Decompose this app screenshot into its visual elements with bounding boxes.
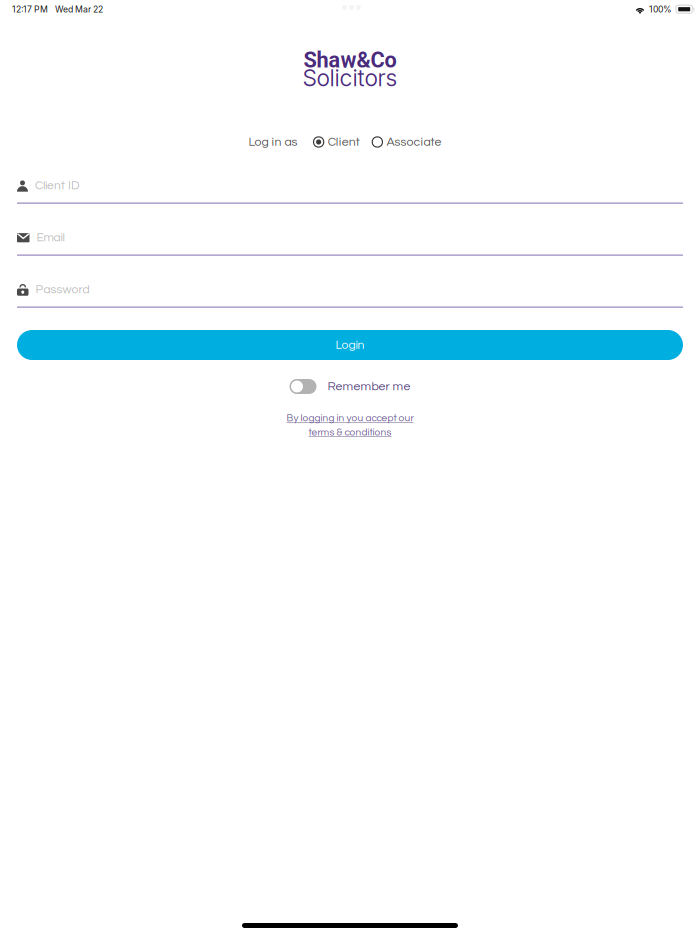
button[interactable]: Remember me [289,379,410,394]
staticText: Email [36,231,64,244]
staticText: 100% [649,4,672,14]
button[interactable]: Password [17,280,683,312]
staticText: Log in as [249,136,298,148]
staticText: By logging in you accept our [286,413,413,423]
staticText: Login [335,339,364,351]
staticText: 12:17 PM [12,4,48,14]
staticText: Client [328,136,360,148]
button[interactable]: Login [17,330,683,360]
button[interactable]: Client [314,136,360,148]
button[interactable]: Email [17,228,683,260]
staticText: Solicitors [302,64,397,92]
staticText: Remember me [327,380,410,393]
button[interactable]: Associate [372,136,441,148]
staticText: Client ID [35,179,79,192]
staticText: Associate [386,136,441,148]
button[interactable]: Client ID [17,176,683,208]
staticText: Password [35,283,89,296]
staticText: terms & conditions [308,427,391,438]
staticText: Wed Mar 22 [55,4,103,14]
staticText: Shaw&Co [303,47,396,73]
button[interactable]: By logging in you accept our [286,413,413,438]
